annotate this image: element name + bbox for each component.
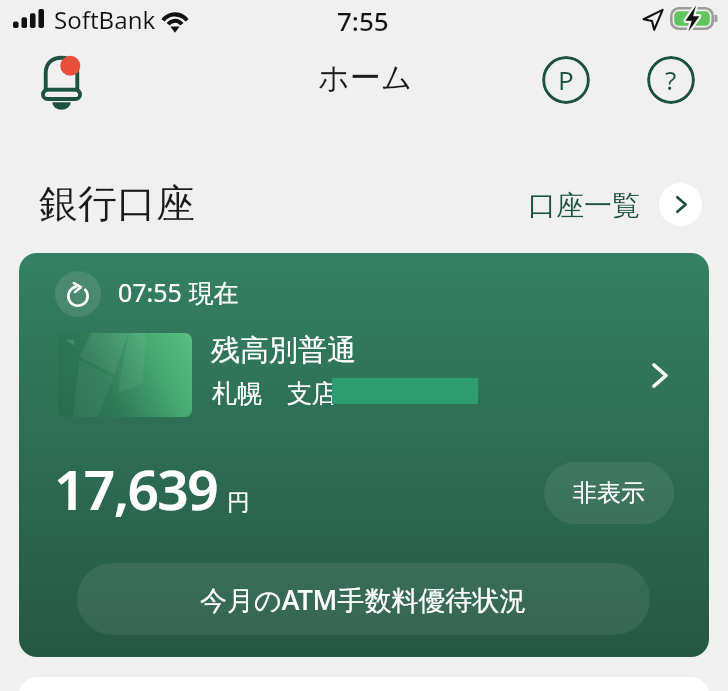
staticText: 銀行口座 xyxy=(39,179,195,228)
staticText: 口座一覧 xyxy=(528,188,640,223)
staticText: 非表示 xyxy=(573,478,645,508)
staticText: 残高別普通 xyxy=(211,332,356,369)
button[interactable]: 口座一覧 xyxy=(528,183,702,226)
staticText: SoftBank xyxy=(54,3,156,36)
button[interactable]: Refresh xyxy=(55,271,101,317)
staticText: 札幌 支店 xyxy=(212,375,337,409)
staticText: 17,639 xyxy=(54,451,218,526)
staticText: P xyxy=(558,62,574,97)
button[interactable]: 非表示 xyxy=(544,462,674,524)
staticText: 今月のATM手数料優待状況 xyxy=(200,581,527,618)
button[interactable]: Points xyxy=(542,56,590,104)
staticText: ホーム xyxy=(318,58,413,97)
button[interactable]: 残高別普通 xyxy=(19,323,709,428)
button[interactable]: Notifications xyxy=(30,50,94,114)
button[interactable]: Help xyxy=(647,56,695,104)
staticText: 07:55 現在 xyxy=(118,275,239,309)
staticText: 7:55 xyxy=(337,3,389,38)
button[interactable]: 今月のATM手数料優待状況 xyxy=(77,563,650,635)
staticText: ? xyxy=(665,62,677,97)
staticText: 円 xyxy=(227,488,250,517)
